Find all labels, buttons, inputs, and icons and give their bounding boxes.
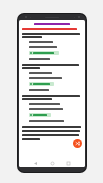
button[interactable]	[29, 46, 82, 48]
button[interactable]	[29, 41, 82, 43]
button[interactable]	[29, 108, 82, 110]
button[interactable]	[29, 51, 82, 55]
button[interactable]	[29, 103, 82, 105]
button[interactable]: Recent apps	[65, 160, 72, 167]
button[interactable]: Back	[32, 160, 39, 167]
button[interactable]	[29, 72, 82, 74]
button[interactable]	[29, 120, 82, 122]
button[interactable]	[29, 58, 82, 60]
button[interactable]	[29, 82, 82, 86]
button[interactable]: Shuffle questions	[73, 139, 82, 148]
button[interactable]: Home	[49, 160, 56, 167]
button[interactable]	[29, 89, 82, 91]
button[interactable]	[29, 77, 82, 79]
button[interactable]	[29, 113, 82, 117]
button[interactable]	[22, 23, 82, 25]
